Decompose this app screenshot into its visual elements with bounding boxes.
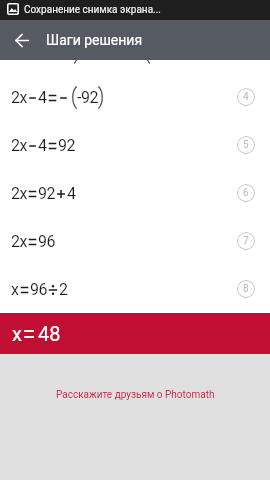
button[interactable]: 2x bbox=[0, 169, 270, 217]
staticText: 5 bbox=[243, 139, 249, 151]
staticText: 6 bbox=[243, 187, 249, 199]
staticText: 2x bbox=[11, 184, 27, 203]
staticText: 48 bbox=[38, 322, 61, 345]
staticText: 4 bbox=[67, 184, 76, 203]
staticText: 7 bbox=[243, 235, 249, 247]
staticText: 4 bbox=[38, 136, 47, 155]
staticText: 4 bbox=[243, 91, 249, 103]
staticText: -92 bbox=[77, 88, 98, 107]
staticText: x bbox=[11, 280, 19, 299]
button[interactable]: 2x bbox=[0, 217, 270, 265]
staticText: 2x bbox=[11, 136, 27, 155]
staticText: 8 bbox=[243, 283, 249, 295]
staticText: 2 bbox=[59, 280, 68, 299]
staticText: 4 bbox=[38, 88, 47, 107]
staticText: 92 bbox=[58, 136, 75, 155]
staticText: 96 bbox=[30, 280, 47, 299]
staticText: 2x bbox=[11, 88, 27, 107]
staticText: 2x bbox=[11, 232, 27, 251]
staticText: x bbox=[12, 322, 22, 345]
button[interactable]: Back bbox=[0, 20, 44, 60]
staticText: 96 bbox=[38, 232, 55, 251]
staticText: Шаги решения bbox=[46, 32, 143, 48]
button[interactable]: 2x bbox=[0, 73, 270, 121]
button[interactable]: Расскажите друзьям о Photomath bbox=[56, 389, 215, 401]
staticText: Сохранение снимка экрана... bbox=[24, 4, 161, 16]
staticText: 92 bbox=[38, 184, 55, 203]
button[interactable]: x bbox=[0, 265, 270, 313]
button[interactable]: x bbox=[0, 313, 270, 354]
button[interactable]: 2x bbox=[0, 121, 270, 169]
